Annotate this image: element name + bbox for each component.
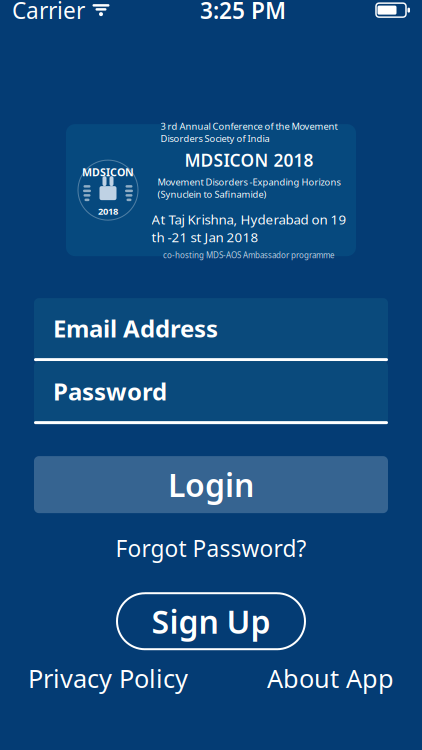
button[interactable]: Sign Up bbox=[117, 593, 305, 649]
button[interactable]: Forgot Password? bbox=[105, 527, 316, 569]
staticText: Email Address bbox=[53, 312, 218, 344]
staticText: co-hosting MDS-AOS Ambassador programme bbox=[163, 250, 335, 260]
staticText: Login bbox=[168, 463, 254, 506]
staticText: MDSICON 2018 bbox=[184, 149, 313, 172]
staticText: Privacy Policy bbox=[28, 661, 188, 695]
staticText: Carrier bbox=[12, 0, 85, 25]
staticText: 3 rd Annual Conference of the Movement D… bbox=[160, 120, 337, 145]
staticText: Movement Disorders -Expanding Horizons (… bbox=[157, 176, 340, 200]
button[interactable]: Login bbox=[34, 456, 388, 513]
staticText: At Taj Krishna, Hyderabad on 19 th -21 s… bbox=[151, 210, 346, 246]
button[interactable]: Password bbox=[34, 361, 388, 424]
staticText: 3:25 PM bbox=[200, 0, 286, 25]
staticText: Password bbox=[53, 375, 167, 407]
button[interactable]: About App bbox=[267, 655, 394, 701]
staticText: 2018 bbox=[98, 205, 118, 217]
button[interactable]: Email Address bbox=[34, 298, 388, 361]
staticText: Forgot Password? bbox=[115, 533, 306, 563]
staticText: About App bbox=[267, 661, 394, 695]
staticText: Sign Up bbox=[151, 600, 270, 642]
button[interactable]: Privacy Policy bbox=[28, 655, 188, 701]
staticText: MDSICON bbox=[82, 165, 134, 179]
